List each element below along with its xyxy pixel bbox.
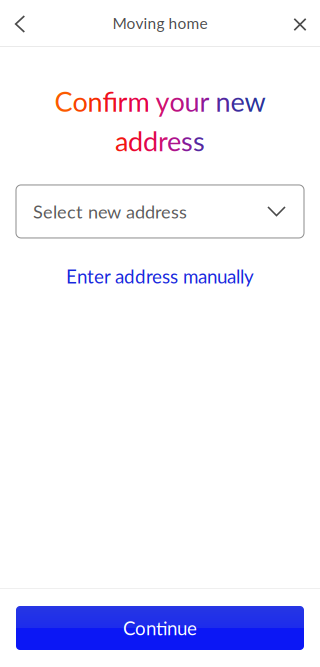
staticText: Confirm your new — [54, 85, 265, 117]
staticText: Select new address — [33, 201, 187, 222]
button[interactable]: Enter address manually — [56, 256, 264, 297]
button[interactable]: Continue — [16, 606, 304, 650]
staticText: Continue — [123, 617, 197, 639]
staticText: address — [115, 124, 205, 157]
button[interactable]: Back — [0, 0, 40, 46]
button[interactable]: Select new address — [16, 185, 304, 238]
button[interactable]: Close — [280, 0, 320, 46]
staticText: Enter address manually — [66, 265, 254, 288]
staticText: Moving home — [112, 14, 207, 32]
